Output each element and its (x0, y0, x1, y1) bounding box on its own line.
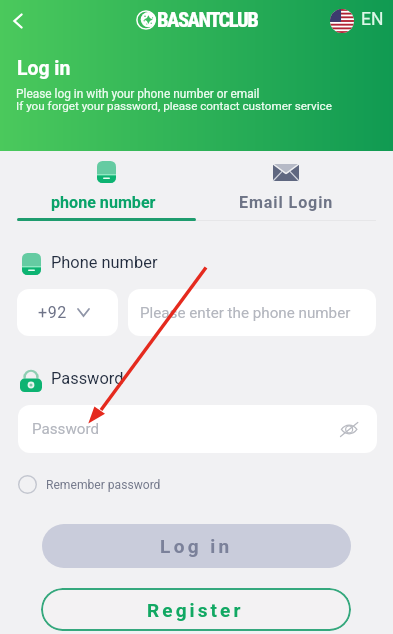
button[interactable]: Register (41, 588, 351, 631)
button[interactable]: Show password (334, 416, 366, 448)
staticText: phone number (51, 193, 156, 212)
staticText: +92 (38, 303, 67, 322)
button[interactable]: Back (5, 8, 31, 34)
staticText: Phone number (51, 253, 158, 272)
button[interactable]: Email Login (196, 153, 376, 219)
staticText: Register (147, 599, 244, 621)
button[interactable]: Log in (42, 524, 351, 568)
staticText: Please enter the phone number (140, 304, 351, 322)
button[interactable]: phone number (17, 153, 196, 219)
staticText: Password (32, 420, 100, 438)
button[interactable]: Please enter the phone number (128, 289, 376, 336)
staticText: Log in (160, 535, 233, 557)
staticText: BASANTCLUB (157, 8, 258, 32)
staticText: Email Login (239, 193, 334, 212)
button[interactable]: Remember password (18, 475, 161, 494)
staticText: If you forget your password, please cont… (16, 99, 332, 113)
staticText: Password (51, 369, 124, 388)
button[interactable]: +92 (17, 289, 118, 336)
staticText: EN (361, 9, 384, 30)
staticText: Remember password (46, 478, 161, 492)
other: Language (330, 9, 354, 33)
staticText: Please log in with your phone number or … (16, 87, 260, 101)
staticText: Log in (17, 57, 71, 80)
button[interactable]: Password (18, 405, 377, 453)
